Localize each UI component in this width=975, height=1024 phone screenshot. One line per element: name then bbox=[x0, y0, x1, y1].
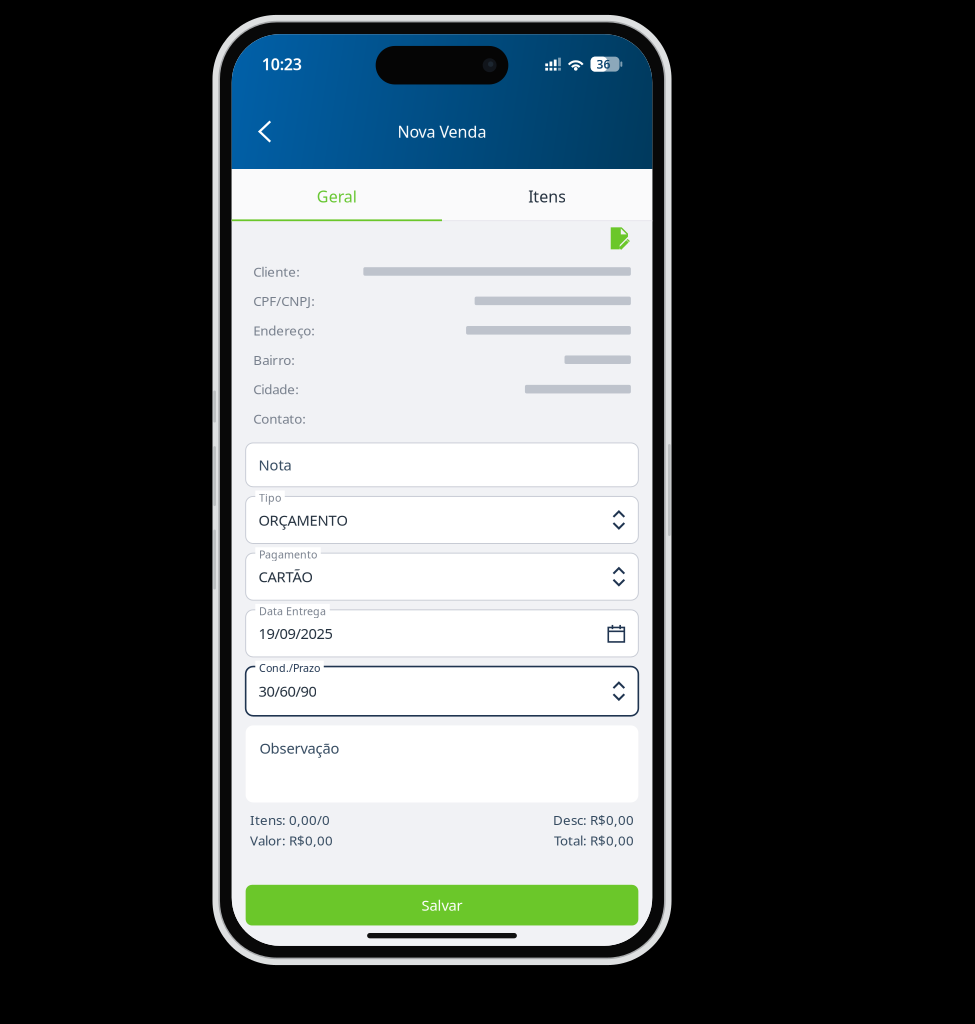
staticText: Nova Venda bbox=[397, 121, 486, 142]
staticText: Cond./Prazo bbox=[259, 661, 320, 675]
staticText: Geral bbox=[317, 186, 357, 207]
staticText: Itens: 0,00/0 bbox=[250, 811, 330, 829]
staticText: Observação bbox=[260, 738, 340, 758]
staticText: Total: R$0,00 bbox=[554, 831, 634, 849]
button[interactable]: Itens bbox=[442, 171, 652, 221]
staticText: Bairro: bbox=[253, 351, 295, 369]
staticText: Pagamento bbox=[259, 547, 317, 561]
staticText: Cidade: bbox=[253, 380, 299, 398]
staticText: Itens bbox=[528, 186, 566, 207]
staticText: Nota bbox=[258, 455, 291, 475]
staticText: 19/09/2025 bbox=[258, 624, 332, 643]
staticText: Valor: R$0,00 bbox=[250, 831, 333, 849]
button[interactable]: Edit order bbox=[606, 223, 638, 255]
staticText: CPF/CNPJ: bbox=[253, 292, 315, 310]
staticText: ORÇAMENTO bbox=[258, 510, 347, 530]
staticText: Data Entrega bbox=[259, 604, 326, 618]
staticText: 10:23 bbox=[262, 53, 302, 75]
staticText: Contato: bbox=[253, 410, 306, 427]
staticText: 30/60/90 bbox=[258, 681, 316, 701]
button[interactable]: Salvar bbox=[246, 885, 638, 925]
staticText: CARTÃO bbox=[258, 567, 312, 586]
staticText: Endereço: bbox=[253, 321, 315, 339]
staticText: Cliente: bbox=[253, 263, 300, 280]
staticText: Desc: R$0,00 bbox=[553, 811, 634, 829]
staticText: 36 bbox=[597, 56, 611, 72]
button[interactable]: Back bbox=[241, 108, 288, 155]
staticText: Salvar bbox=[421, 895, 462, 915]
staticText: Tipo bbox=[259, 490, 281, 505]
button[interactable]: Geral bbox=[232, 171, 442, 221]
